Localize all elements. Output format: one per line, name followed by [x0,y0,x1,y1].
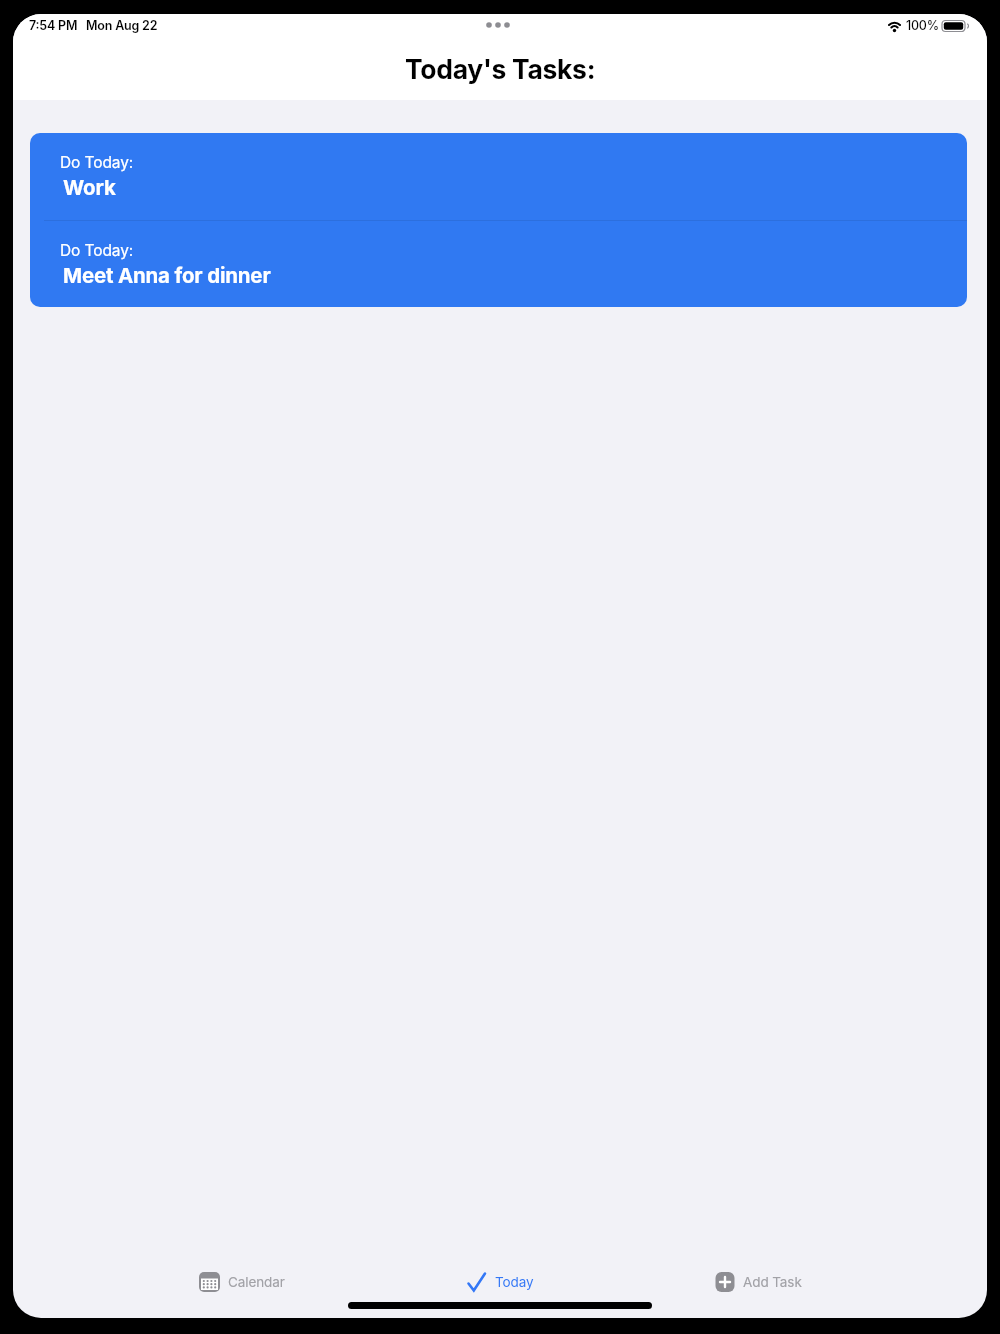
staticText: Meet Anna for dinner [63,263,271,288]
staticText: 100% [906,18,939,33]
staticText: Do Today: [60,153,134,172]
button[interactable]: Do Today: [30,133,967,220]
staticText: 7:54 PM [29,18,78,33]
button[interactable]: Do Today: [30,221,967,307]
staticText: Work [63,175,116,200]
staticText: Do Today: [60,241,134,260]
staticText: Add Task [743,1274,802,1290]
button[interactable]: Calendar [113,1262,371,1302]
staticText: Today's Tasks: [405,53,596,85]
button[interactable]: Add Task [629,1262,887,1302]
staticText: Mon Aug 22 [86,18,158,33]
button[interactable]: Today [371,1262,629,1302]
staticText: Calendar [228,1274,285,1290]
staticText: Today [495,1274,534,1290]
